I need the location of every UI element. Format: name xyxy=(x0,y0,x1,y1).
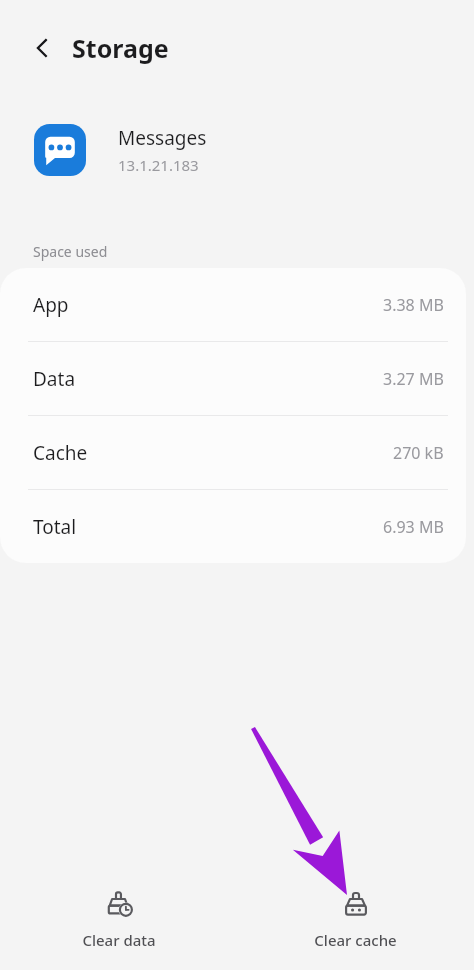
staticText: 3.38 MB xyxy=(383,294,444,316)
staticText: 270 kB xyxy=(393,442,444,464)
staticText: Messages xyxy=(118,125,207,151)
staticText: Space used xyxy=(33,242,108,261)
staticText: Storage xyxy=(72,31,169,65)
staticText: 13.1.21.183 xyxy=(118,155,199,175)
button[interactable]: Clear data xyxy=(0,874,237,950)
staticText: Clear cache xyxy=(314,930,397,950)
button[interactable]: Cache xyxy=(0,416,466,489)
staticText: Total xyxy=(33,514,77,540)
staticText: Cache xyxy=(33,440,88,466)
staticText: 6.93 MB xyxy=(383,516,444,538)
button[interactable]: Back xyxy=(20,26,64,70)
other: Clear data xyxy=(104,890,134,920)
button[interactable]: Total xyxy=(0,490,466,563)
staticText: Clear data xyxy=(82,930,156,950)
staticText: App xyxy=(33,292,69,318)
other: Clear cache xyxy=(341,890,371,920)
staticText: Data xyxy=(33,366,76,392)
button[interactable]: Data xyxy=(0,342,466,415)
button[interactable]: App xyxy=(0,268,466,341)
button[interactable]: Clear cache xyxy=(237,874,474,950)
staticText: 3.27 MB xyxy=(383,368,444,390)
